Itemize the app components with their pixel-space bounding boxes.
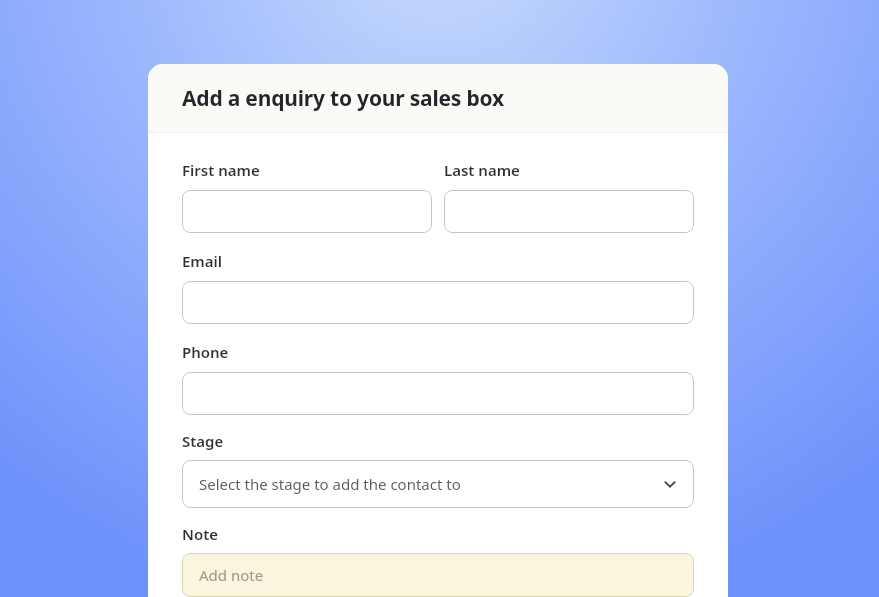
staticText: Stage	[182, 431, 224, 451]
staticText: Add note	[199, 565, 264, 585]
button[interactable]	[182, 281, 694, 324]
staticText: Add a enquiry to your sales box	[182, 84, 504, 113]
staticText: Select the stage to add the contact to	[199, 474, 662, 494]
staticText: Last name	[444, 160, 520, 180]
button[interactable]	[444, 190, 694, 233]
staticText: Note	[182, 524, 219, 544]
staticText: Phone	[182, 342, 229, 362]
button[interactable]	[182, 190, 432, 233]
staticText: First name	[182, 160, 260, 180]
button[interactable]: Select the stage to add the contact to	[182, 460, 694, 508]
button[interactable]	[182, 372, 694, 415]
staticText: Email	[182, 251, 223, 271]
button[interactable]: Add note	[182, 553, 694, 597]
